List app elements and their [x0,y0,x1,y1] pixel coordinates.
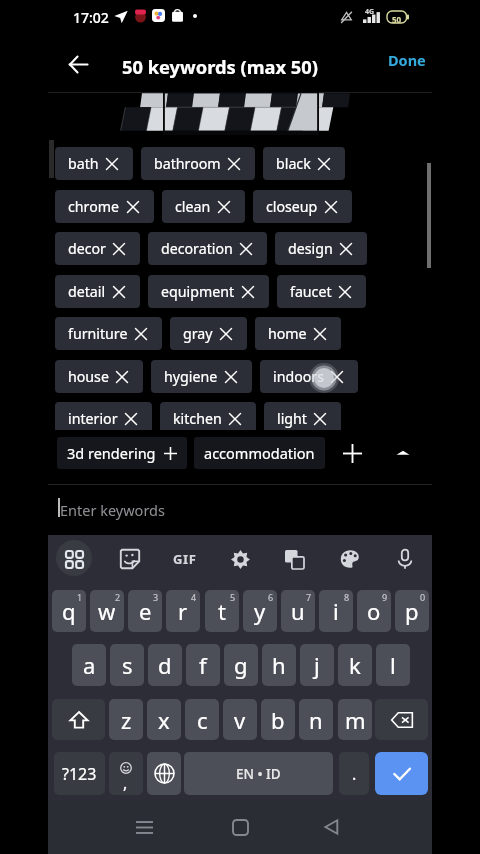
button[interactable]: bath [55,147,133,180]
button[interactable]: ?123 [54,752,105,795]
button[interactable]: Shift [52,699,105,740]
button[interactable]: m [338,699,372,740]
button[interactable]: light [264,402,341,430]
button[interactable]: EN • ID [184,752,333,795]
button[interactable]: home [255,317,341,350]
button[interactable]: c [185,699,219,740]
button[interactable]: s [110,644,144,686]
button[interactable]: Apps [54,539,94,579]
button[interactable]: bathroom [141,147,255,180]
button[interactable]: gray [170,317,247,350]
staticText: bathroom [154,154,221,173]
button[interactable]: d [148,644,182,686]
button[interactable]: f [186,644,220,686]
button[interactable]: l [376,644,410,686]
button[interactable]: Voice input [385,539,425,579]
staticText: t [218,596,226,626]
button[interactable]: Settings [220,539,260,579]
staticText: clean [175,197,211,216]
button[interactable]: Recent apps [124,807,164,847]
staticText: k [349,650,361,680]
button[interactable]: i [319,590,353,632]
button[interactable]: b [261,699,295,740]
staticText: s [122,650,133,680]
button[interactable]: Add keyword [333,434,371,472]
button[interactable]: equipment [148,275,269,308]
button[interactable]: GIF [165,539,205,579]
button[interactable]: Change language [147,752,181,795]
staticText: w [98,596,116,626]
staticText: g [234,650,248,680]
button[interactable]: Translate [274,539,314,579]
button[interactable]: y [243,590,277,632]
button[interactable]: decor [55,232,140,265]
button[interactable]: closeup [253,190,352,223]
button[interactable]: accommodation [194,437,325,469]
button[interactable]: furniture [55,317,162,350]
button[interactable]: z [109,699,143,740]
button[interactable]: faucet [277,275,366,308]
button[interactable]: t [205,590,239,632]
staticText: p [405,596,419,626]
staticText: Done [388,50,426,70]
button[interactable]: n [299,699,333,740]
button[interactable]: Emoji [109,752,143,795]
button[interactable]: v [223,699,257,740]
staticText: e [139,596,152,626]
button[interactable]: w [90,590,124,632]
staticText: , [123,772,128,794]
button[interactable]: r [166,590,200,632]
button[interactable]: clean [162,190,245,223]
button[interactable]: Back [58,44,98,84]
button[interactable]: 3d rendering [57,437,187,469]
button[interactable]: design [275,232,367,265]
button[interactable]: decoration [148,232,267,265]
button[interactable]: chrome [55,190,154,223]
staticText: GIF [173,550,197,568]
staticText: interior [68,409,118,428]
staticText: house [68,367,109,386]
button[interactable]: indoors [260,360,358,393]
button[interactable]: Themes [330,539,370,579]
staticText: x [158,705,170,735]
button[interactable]: Done [382,42,432,78]
staticText: 3d rendering [67,443,156,463]
staticText: hygiene [164,367,218,386]
staticText: EN • ID [236,765,281,783]
staticText: black [276,154,311,173]
button[interactable]: Stickers [110,539,150,579]
button[interactable]: Back [311,807,351,847]
button[interactable]: q [52,590,86,632]
button[interactable]: j [300,644,334,686]
button[interactable]: h [262,644,296,686]
button[interactable]: Collapse [384,434,422,472]
staticText: 3 [153,591,159,603]
button[interactable]: k [338,644,372,686]
button[interactable]: kitchen [160,402,256,430]
button[interactable]: g [224,644,258,686]
button[interactable]: a [72,644,106,686]
staticText: chrome [68,197,120,216]
button[interactable]: Home [220,807,260,847]
button[interactable]: . [339,752,369,795]
staticText: design [288,239,333,258]
button[interactable]: e [128,590,162,632]
button[interactable]: house [55,360,143,393]
button[interactable]: Enter [375,752,428,795]
staticText: bath [68,154,99,173]
button[interactable]: o [357,590,391,632]
staticText: closeup [266,197,318,216]
button[interactable]: x [147,699,181,740]
staticText: i [333,596,339,626]
button[interactable]: black [263,147,345,180]
staticText: m [345,705,366,735]
button[interactable]: Backspace [375,699,428,740]
button[interactable]: interior [55,402,152,430]
button[interactable]: Enter keywords [48,485,432,534]
button[interactable]: p [395,590,429,632]
staticText: 6 [268,591,274,603]
button[interactable]: u [281,590,315,632]
button[interactable]: hygiene [151,360,252,393]
button[interactable]: detail [55,275,140,308]
staticText: 50 [392,14,402,25]
